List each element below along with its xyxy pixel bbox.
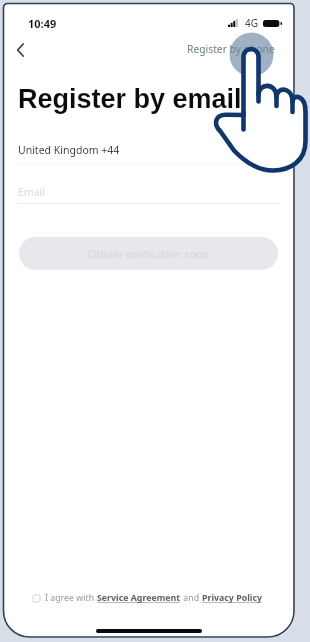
button[interactable]: Register by phone (183, 38, 279, 60)
staticText: Register by phone (187, 42, 275, 56)
button[interactable]: I agree with (33, 592, 262, 604)
staticText: Obtain verification code (88, 246, 209, 261)
button[interactable]: Back (7, 37, 33, 63)
button[interactable]: Email (18, 185, 45, 199)
staticText: Privacy Policy (202, 592, 262, 604)
staticText: and (181, 592, 202, 604)
staticText: 10:49 (28, 16, 57, 31)
button[interactable]: Obtain verification code (19, 237, 278, 270)
staticText: I agree with (45, 592, 97, 604)
button[interactable]: United Kingdom +44 (18, 143, 120, 157)
staticText: 4G (245, 16, 258, 30)
staticText: Service Agreement (97, 592, 181, 604)
staticText: Register by email (18, 84, 242, 114)
